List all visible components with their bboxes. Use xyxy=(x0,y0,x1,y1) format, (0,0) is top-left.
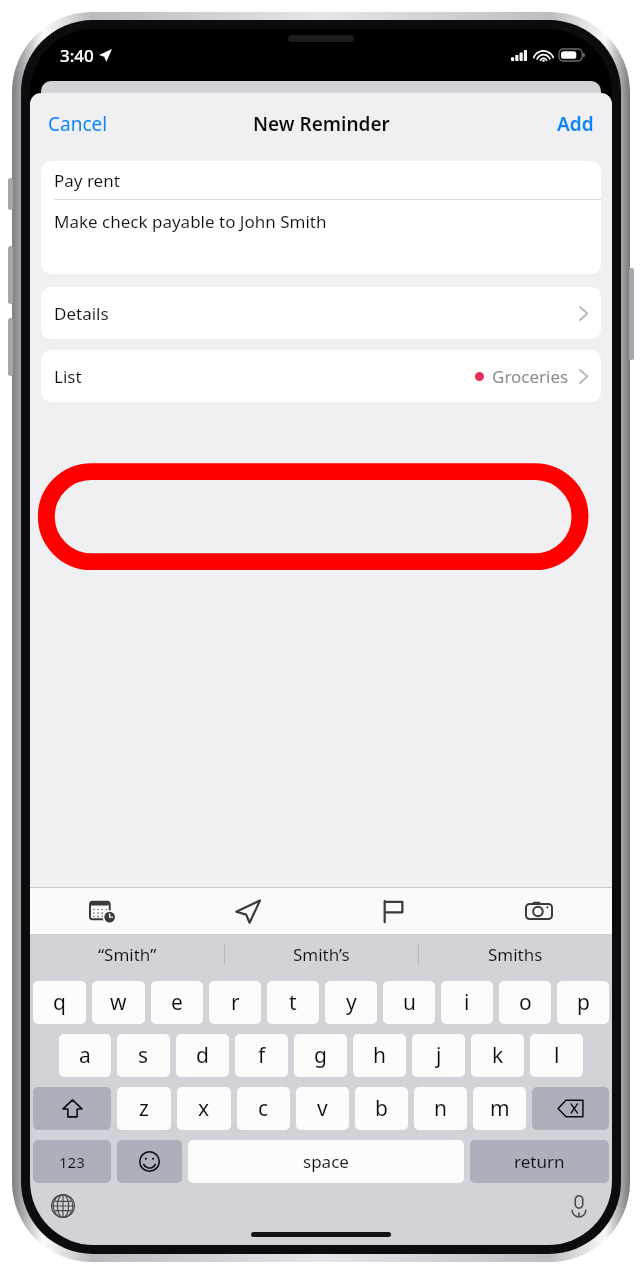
button[interactable]: Cancel xyxy=(30,102,126,146)
staticText: Details xyxy=(54,302,109,325)
staticText: Pay rent xyxy=(54,169,120,192)
staticText: t xyxy=(289,988,297,1017)
button[interactable]: Smiths xyxy=(419,934,612,975)
button[interactable]: Emoji xyxy=(117,1140,182,1183)
staticText: b xyxy=(375,1094,388,1123)
button[interactable]: “Smith” xyxy=(30,934,224,975)
staticText: 123 xyxy=(59,1152,85,1172)
staticText: Smith’s xyxy=(293,943,350,966)
button[interactable]: Pay rent xyxy=(41,161,601,199)
button[interactable]: Date and time xyxy=(30,888,175,934)
staticText: r xyxy=(231,988,240,1017)
staticText: p xyxy=(577,988,590,1017)
staticText: Cancel xyxy=(48,111,108,137)
staticText: z xyxy=(139,1094,149,1123)
button[interactable]: m xyxy=(473,1087,526,1130)
button[interactable]: v xyxy=(296,1087,349,1130)
button[interactable]: d xyxy=(176,1034,229,1077)
button[interactable]: return xyxy=(470,1140,609,1183)
button[interactable]: Dictate xyxy=(562,1189,596,1223)
staticText: New Reminder xyxy=(253,111,390,137)
button[interactable]: u xyxy=(383,981,435,1024)
staticText: “Smith” xyxy=(98,943,157,966)
button[interactable]: e xyxy=(151,981,203,1024)
button[interactable]: List xyxy=(41,350,601,402)
button[interactable]: p xyxy=(557,981,609,1024)
staticText: j xyxy=(436,1041,442,1070)
button[interactable]: z xyxy=(117,1087,171,1130)
button[interactable]: x xyxy=(177,1087,231,1130)
button[interactable]: s xyxy=(117,1034,170,1077)
staticText: u xyxy=(403,988,416,1017)
button[interactable]: Make check payable to John Smith xyxy=(41,200,601,274)
staticText: g xyxy=(314,1041,327,1070)
staticText: return xyxy=(514,1150,565,1173)
button[interactable]: l xyxy=(530,1034,583,1077)
button[interactable]: w xyxy=(92,981,145,1024)
button[interactable]: Delete xyxy=(532,1087,609,1130)
button[interactable]: r xyxy=(209,981,261,1024)
staticText: Add xyxy=(557,111,594,137)
button[interactable]: Location xyxy=(175,888,320,934)
button[interactable]: n xyxy=(414,1087,467,1130)
button[interactable]: y xyxy=(325,981,377,1024)
button[interactable]: q xyxy=(33,981,86,1024)
button[interactable]: k xyxy=(471,1034,524,1077)
button[interactable]: h xyxy=(353,1034,406,1077)
staticText: a xyxy=(79,1041,91,1070)
button[interactable]: space xyxy=(188,1140,464,1183)
staticText: e xyxy=(171,988,183,1017)
staticText: space xyxy=(303,1150,349,1173)
staticText: Make check payable to John Smith xyxy=(54,210,327,233)
button[interactable]: Details xyxy=(41,287,601,339)
button[interactable]: a xyxy=(59,1034,111,1077)
staticText: s xyxy=(138,1041,149,1070)
button[interactable]: Camera xyxy=(466,888,612,934)
staticText: l xyxy=(554,1041,560,1070)
staticText: x xyxy=(198,1094,210,1123)
button[interactable]: g xyxy=(294,1034,347,1077)
staticText: c xyxy=(258,1094,269,1123)
staticText: m xyxy=(490,1094,510,1123)
button[interactable]: f xyxy=(235,1034,288,1077)
staticText: 3:40 xyxy=(60,44,94,67)
staticText: o xyxy=(519,988,532,1017)
button[interactable]: o xyxy=(499,981,551,1024)
button[interactable]: Add xyxy=(539,102,612,146)
staticText: n xyxy=(434,1094,447,1123)
staticText: Smiths xyxy=(488,943,543,966)
button[interactable]: t xyxy=(267,981,319,1024)
button[interactable]: Flag xyxy=(320,888,466,934)
staticText: w xyxy=(110,988,127,1017)
button[interactable]: Smith’s xyxy=(225,934,418,975)
button[interactable]: c xyxy=(237,1087,290,1130)
staticText: d xyxy=(196,1041,209,1070)
staticText: Groceries xyxy=(492,365,569,388)
staticText: q xyxy=(53,988,66,1017)
button[interactable]: 123 xyxy=(33,1140,111,1183)
staticText: i xyxy=(464,988,470,1017)
button[interactable]: i xyxy=(441,981,493,1024)
staticText: List xyxy=(54,365,82,388)
button[interactable]: b xyxy=(355,1087,408,1130)
button[interactable]: Change keyboard xyxy=(46,1189,80,1223)
button[interactable]: Shift xyxy=(33,1087,111,1130)
staticText: k xyxy=(492,1041,504,1070)
staticText: f xyxy=(258,1041,266,1070)
button[interactable]: j xyxy=(412,1034,465,1077)
staticText: h xyxy=(373,1041,386,1070)
staticText: y xyxy=(346,988,357,1017)
staticText: v xyxy=(317,1094,328,1123)
